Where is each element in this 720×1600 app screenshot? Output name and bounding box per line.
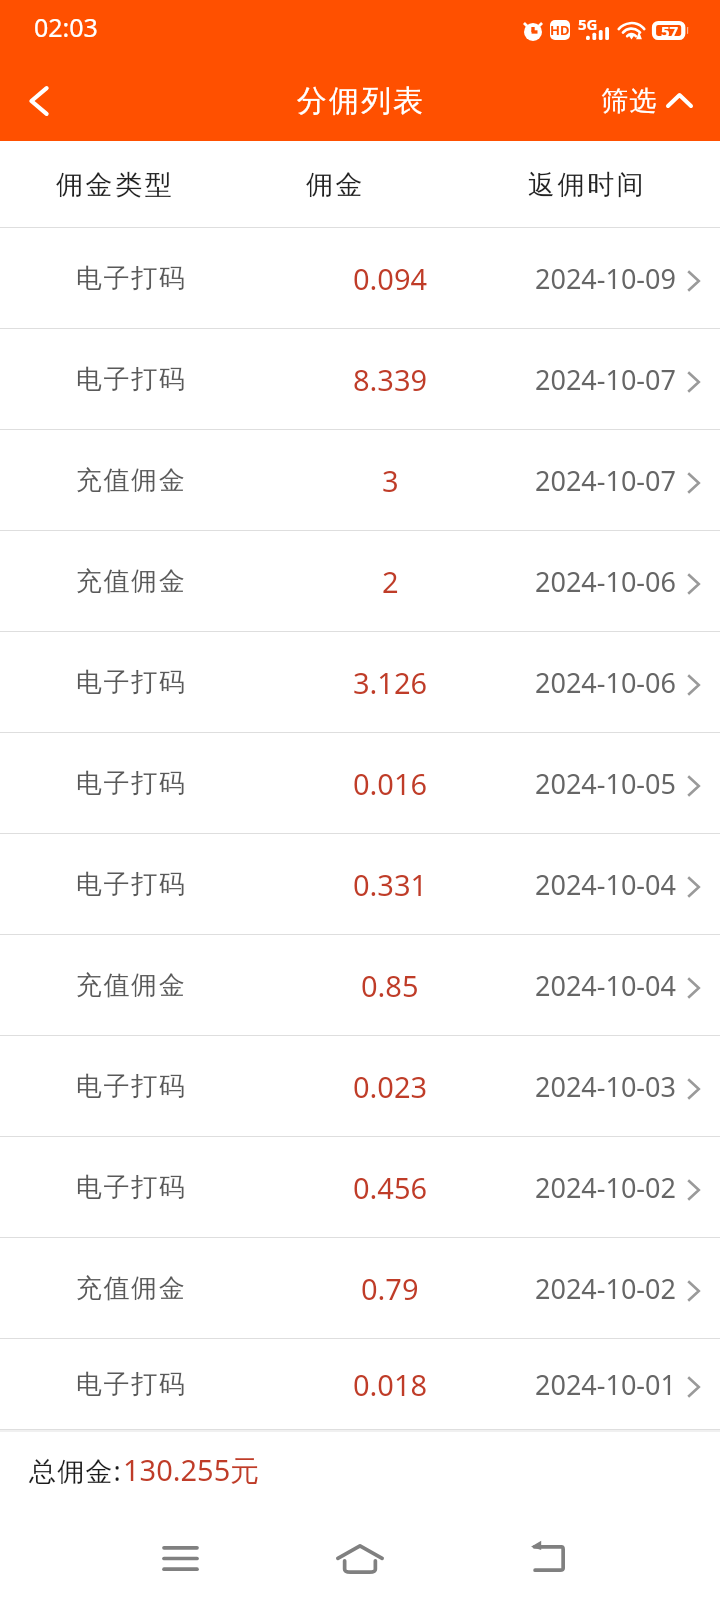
staticText: 0.85	[361, 966, 419, 1005]
staticText: 电子打码	[76, 1171, 187, 1204]
button[interactable]: 电子打码	[0, 1137, 720, 1238]
button[interactable]: 电子打码	[0, 733, 720, 834]
staticText: 3.126	[353, 663, 428, 702]
staticText: 充值佣金	[76, 1272, 187, 1305]
staticText: 电子打码	[76, 666, 187, 699]
button[interactable]: 充值佣金	[0, 935, 720, 1036]
staticText: 2024-10-05	[535, 765, 676, 802]
staticText: 2024-10-06	[535, 664, 676, 701]
button[interactable]: Home	[300, 1531, 420, 1587]
staticText: 0.79	[361, 1269, 419, 1308]
staticText: 5G	[578, 14, 598, 34]
staticText: 0.456	[353, 1168, 428, 1207]
staticText: 2024-10-07	[535, 462, 676, 499]
staticText: 电子打码	[76, 1368, 187, 1401]
staticText: 总佣金:	[29, 1452, 123, 1489]
staticText: 返佣时间	[528, 168, 647, 202]
staticText: 3	[382, 461, 399, 500]
staticText: 57	[661, 21, 679, 40]
button[interactable]: Back	[0, 60, 74, 141]
staticText: 0.016	[353, 764, 428, 803]
staticText: 分佣列表	[296, 82, 424, 120]
staticText: 充值佣金	[76, 464, 187, 497]
staticText: 电子打码	[76, 262, 187, 295]
staticText: 2024-10-06	[535, 563, 676, 600]
staticText: 8.339	[353, 360, 428, 399]
staticText: 2024-10-02	[535, 1169, 676, 1206]
button[interactable]: 筛选	[601, 60, 720, 141]
staticText: 2024-10-07	[535, 361, 676, 398]
staticText: 电子打码	[76, 363, 187, 396]
staticText: 电子打码	[76, 767, 187, 800]
button[interactable]: 电子打码	[0, 632, 720, 733]
staticText: 2024-10-04	[535, 866, 676, 903]
button[interactable]: Recent apps	[120, 1530, 240, 1586]
staticText: 130.255元	[123, 1450, 260, 1490]
staticText: 0.023	[353, 1067, 428, 1106]
button[interactable]: 电子打码	[0, 329, 720, 430]
staticText: 充值佣金	[76, 969, 187, 1002]
button[interactable]: 电子打码	[0, 1036, 720, 1137]
button[interactable]: 电子打码	[0, 228, 720, 329]
staticText: 电子打码	[76, 868, 187, 901]
staticText: 02:03	[34, 10, 98, 44]
button[interactable]: 电子打码	[0, 834, 720, 935]
button[interactable]: 电子打码	[0, 1339, 720, 1430]
staticText: 0.331	[353, 865, 428, 904]
staticText: 0.018	[353, 1365, 428, 1404]
staticText: 充值佣金	[76, 565, 187, 598]
staticText: HD	[550, 21, 570, 39]
button[interactable]: Back	[488, 1530, 608, 1586]
staticText: 电子打码	[76, 1070, 187, 1103]
staticText: 佣金类型	[56, 168, 175, 202]
staticText: 佣金	[306, 168, 366, 202]
button[interactable]: 充值佣金	[0, 1238, 720, 1339]
button[interactable]: 充值佣金	[0, 531, 720, 632]
staticText: 2	[382, 562, 399, 601]
staticText: 2024-10-02	[535, 1270, 676, 1307]
staticText: 2024-10-09	[535, 260, 676, 297]
staticText: 2024-10-01	[535, 1366, 676, 1403]
staticText: 0.094	[353, 259, 428, 298]
staticText: 2024-10-03	[535, 1068, 676, 1105]
button[interactable]: 充值佣金	[0, 430, 720, 531]
staticText: 2024-10-04	[535, 967, 676, 1004]
staticText: 筛选	[601, 84, 659, 118]
